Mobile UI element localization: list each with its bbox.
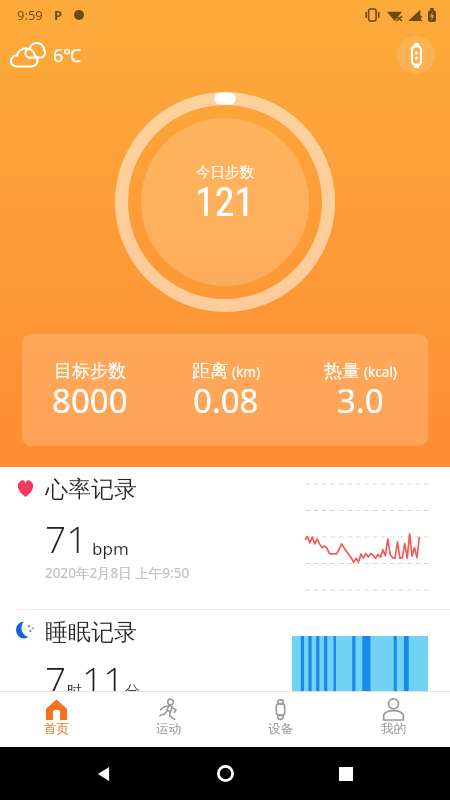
staticText: 距离 xyxy=(192,360,228,383)
staticText: bpm xyxy=(92,537,129,560)
staticText: 7 xyxy=(45,654,67,704)
staticText: 我的 xyxy=(381,721,406,737)
staticText: 3.0 xyxy=(337,378,384,423)
staticText: (kcal) xyxy=(364,363,397,381)
button[interactable]: 目标步数 xyxy=(22,334,158,446)
staticText: 121 xyxy=(195,179,255,226)
staticText: 运动 xyxy=(156,721,181,737)
button[interactable]: Home xyxy=(203,747,247,800)
button[interactable]: Recents xyxy=(328,747,364,800)
staticText: 11 xyxy=(82,654,125,704)
staticText: 0.08 xyxy=(193,378,259,423)
staticText: (km) xyxy=(232,363,260,381)
button[interactable]: 热量 xyxy=(293,334,428,446)
button[interactable]: My device xyxy=(397,36,435,74)
button[interactable]: 运动 xyxy=(112,692,224,747)
staticText: P xyxy=(54,6,63,24)
staticText: 今日步数 xyxy=(196,163,254,181)
staticText: 9:59 xyxy=(17,6,43,24)
button[interactable]: 睡眠记录 xyxy=(0,610,450,740)
button[interactable]: 距离 xyxy=(158,334,293,446)
staticText: 首页 xyxy=(44,721,69,737)
staticText: 时 xyxy=(67,682,82,701)
staticText: 分 xyxy=(125,682,140,701)
staticText: 目标步数 xyxy=(54,360,126,383)
staticText: 睡眠记录 xyxy=(45,618,137,647)
staticText: 心率记录 xyxy=(45,475,137,504)
staticText: 2020年2月8日 上午9:50 xyxy=(45,564,190,582)
button[interactable]: 我的 xyxy=(337,692,450,747)
staticText: 6℃ xyxy=(53,43,82,68)
button[interactable]: 心率记录 xyxy=(0,467,450,609)
staticText: 8000 xyxy=(52,378,128,423)
staticText: 71 xyxy=(45,513,88,563)
button[interactable]: 首页 xyxy=(0,692,112,747)
staticText: 设备 xyxy=(268,721,293,737)
button[interactable]: 设备 xyxy=(224,692,337,747)
staticText: 热量 xyxy=(324,360,360,383)
button[interactable]: Back xyxy=(86,747,122,800)
